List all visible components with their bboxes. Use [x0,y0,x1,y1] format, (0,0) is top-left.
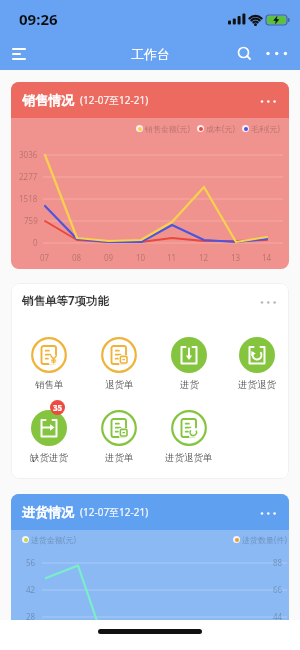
button[interactable]: 进货单 [84,410,154,464]
staticText: 28 [26,611,36,620]
staticText: 进货退货 [238,379,276,391]
staticText: 销售单 [35,379,64,391]
button[interactable]: 进货退货单 [154,410,224,464]
button[interactable] [234,43,256,65]
staticText: 66 [273,584,283,595]
staticText: 进货 [180,379,199,391]
staticText: 进货金额(元) [31,534,76,545]
staticText: 88 [273,557,283,568]
staticText: 缺货进货 [30,452,68,464]
staticText: (12-07至12-21) [80,505,149,519]
staticText: 09 [104,252,114,263]
staticText: 进货单 [105,452,134,464]
staticText: 35 [53,402,63,413]
button[interactable] [264,41,290,67]
staticText: 56 [26,557,36,568]
staticText: 进货退货单 [165,452,213,464]
staticText: 成本(元) [206,123,235,134]
staticText: 工作台 [131,46,170,62]
staticText: 1518 [19,193,38,204]
staticText: 3036 [19,149,38,160]
staticText: 07 [40,252,50,263]
staticText: 42 [26,584,36,595]
staticText: (12-07至12-21) [80,93,149,107]
button[interactable] [257,292,283,310]
staticText: 09:26 [19,9,58,29]
staticText: 12 [199,252,209,263]
staticText: 08 [72,252,82,263]
staticText: 759 [24,215,38,226]
button[interactable]: 进货 [154,337,224,391]
staticText: 2277 [19,171,38,182]
button[interactable]: 销售单 [14,337,84,391]
button[interactable]: 退货单 [84,337,154,391]
staticText: 退货单 [105,379,134,391]
button[interactable] [8,42,32,66]
button[interactable] [257,91,283,109]
staticText: 销售金额(元) [145,123,190,134]
staticText: 进货情况 [22,504,74,520]
button[interactable]: 35 [14,410,84,464]
button[interactable] [257,503,283,521]
staticText: 0 [33,237,38,248]
staticText: 44 [273,611,283,620]
staticText: 13 [231,252,241,263]
staticText: 进货数量(件) [242,534,287,545]
staticText: 毛利(元) [251,123,280,134]
staticText: 10 [136,252,146,263]
button[interactable]: 进货退货 [224,337,289,391]
staticText: 11 [167,252,177,263]
staticText: 14 [262,252,272,263]
staticText: 销售单等7项功能 [22,293,110,309]
staticText: 销售情况 [22,92,74,108]
